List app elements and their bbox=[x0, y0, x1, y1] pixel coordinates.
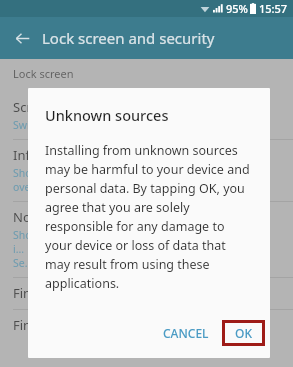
staticText: Notifications bbox=[13, 208, 91, 226]
staticText: Find My Mobile bbox=[13, 284, 107, 302]
staticText: OK bbox=[235, 325, 252, 341]
button[interactable]: Find My Mobile bbox=[0, 278, 293, 309]
staticText: Show information and over... bbox=[13, 166, 123, 194]
staticText: 95% bbox=[226, 1, 248, 16]
staticText: Screen lock type bbox=[13, 98, 112, 116]
staticText: Installing from unknown sources may be h… bbox=[45, 142, 254, 292]
staticText: Lock screen and security bbox=[42, 28, 215, 48]
staticText: Swipe bbox=[13, 118, 43, 132]
button[interactable]: Find it bbox=[0, 310, 293, 341]
button[interactable]: Screen lock type bbox=[0, 92, 293, 139]
button[interactable]: Back bbox=[9, 25, 35, 51]
staticText: 15:57 bbox=[259, 1, 288, 16]
staticText: Lock screen bbox=[13, 66, 74, 81]
staticText: CANCEL bbox=[163, 325, 209, 341]
button[interactable]: OK bbox=[222, 320, 265, 346]
button[interactable]: Notifications bbox=[0, 202, 293, 277]
staticText: Find it bbox=[13, 316, 51, 334]
staticText: Unknown sources bbox=[45, 105, 169, 125]
button[interactable]: Info and app shortcuts bbox=[0, 140, 293, 201]
button[interactable]: CANCEL bbox=[154, 318, 218, 348]
staticText: Show i... Se... bbox=[13, 228, 40, 270]
staticText: Info and app shortcuts bbox=[13, 146, 152, 164]
